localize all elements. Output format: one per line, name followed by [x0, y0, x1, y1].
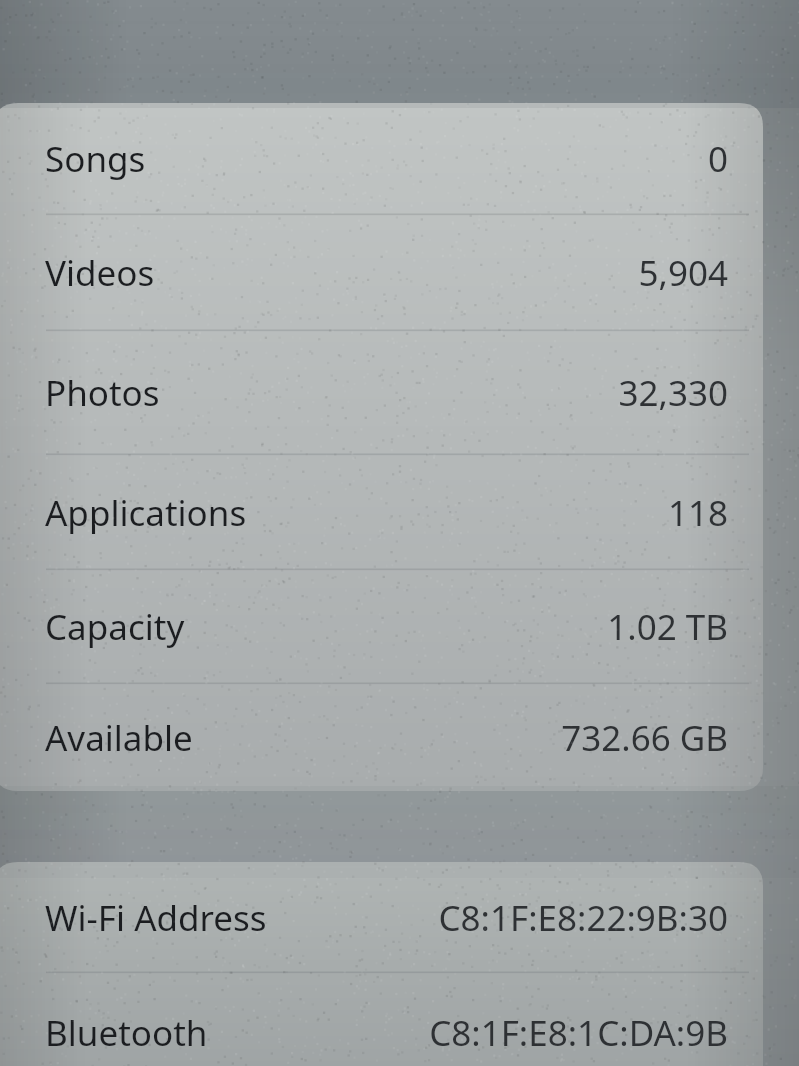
- staticText: Available: [45, 714, 193, 762]
- button[interactable]: Capacity: [0, 570, 763, 684]
- staticText: 5,904: [638, 249, 728, 297]
- staticText: C8:1F:E8:1C:DA:9B: [429, 1009, 728, 1057]
- button[interactable]: Wi-Fi Address: [0, 862, 763, 973]
- staticText: 32,330: [618, 369, 728, 417]
- staticText: Songs: [45, 135, 146, 183]
- staticText: Applications: [45, 489, 247, 537]
- staticText: 118: [667, 489, 728, 537]
- staticText: Bluetooth: [45, 1009, 208, 1057]
- button[interactable]: Videos: [0, 215, 763, 331]
- button[interactable]: Songs: [0, 103, 763, 215]
- button[interactable]: Applications: [0, 455, 763, 570]
- staticText: 732.66 GB: [561, 714, 728, 762]
- staticText: 1.02 TB: [607, 603, 728, 651]
- staticText: 0: [707, 135, 728, 183]
- button[interactable]: Available: [0, 684, 763, 791]
- staticText: Videos: [45, 249, 155, 297]
- staticText: Photos: [45, 369, 160, 417]
- button[interactable]: Bluetooth: [0, 973, 763, 1066]
- staticText: Wi-Fi Address: [45, 894, 267, 942]
- button[interactable]: Photos: [0, 331, 763, 455]
- staticText: Capacity: [45, 603, 185, 651]
- staticText: C8:1F:E8:22:9B:30: [438, 894, 728, 942]
